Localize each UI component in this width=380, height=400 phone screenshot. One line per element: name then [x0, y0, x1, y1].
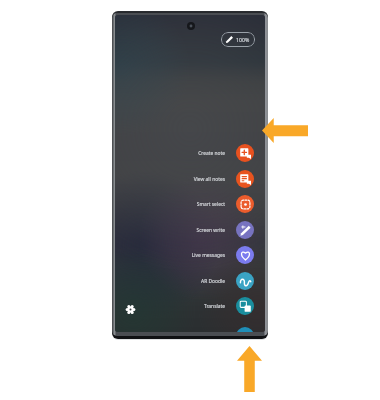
staticText: Translate [151, 303, 225, 310]
staticText: Live messages [151, 252, 225, 259]
staticText: View all notes [151, 176, 225, 183]
button[interactable]: AR Doodle [151, 272, 254, 290]
staticText: Create note [151, 150, 225, 157]
staticText: Smart select [151, 201, 225, 208]
button[interactable]: Screen write [151, 221, 254, 239]
button[interactable]: More Air command actions [236, 327, 254, 332]
button[interactable]: View all notes [151, 170, 254, 188]
button[interactable]: 100% [221, 32, 255, 47]
button[interactable]: Translate [151, 297, 254, 315]
other: Arrow pointing up at the phone [237, 346, 262, 392]
staticText: Screen write [151, 227, 225, 234]
other: Arrow pointing to the Air command menu [262, 118, 308, 143]
staticText: 100% [236, 36, 250, 43]
button[interactable]: Smart select [151, 195, 254, 213]
button[interactable]: Create note [151, 144, 254, 162]
button[interactable]: Live messages [151, 246, 254, 264]
staticText: AR Doodle [151, 278, 225, 285]
button[interactable]: Air command settings [122, 301, 138, 317]
